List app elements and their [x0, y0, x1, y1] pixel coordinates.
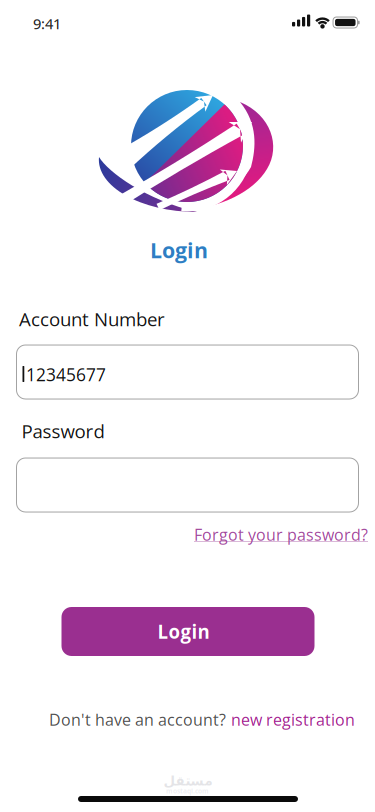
staticText: مستقل	[163, 773, 212, 788]
staticText: Password	[21, 418, 104, 443]
staticText: Don't have an account?	[49, 709, 226, 730]
button[interactable]: new registration	[231, 709, 355, 730]
staticText: Account Number	[19, 306, 165, 331]
staticText: mostaql.com	[166, 787, 209, 795]
staticText: Login	[150, 236, 208, 264]
button[interactable]: Password field	[16, 458, 358, 512]
button[interactable]: Forgot your password?	[194, 524, 368, 545]
staticText: 12345677	[26, 363, 106, 386]
staticText: Forgot your password?	[194, 524, 368, 545]
staticText: new registration	[231, 709, 355, 730]
button[interactable]: Account Number field	[16, 345, 358, 399]
staticText: Login	[157, 619, 209, 644]
button[interactable]: Login	[61, 607, 314, 656]
staticText: 9:41	[33, 14, 61, 33]
